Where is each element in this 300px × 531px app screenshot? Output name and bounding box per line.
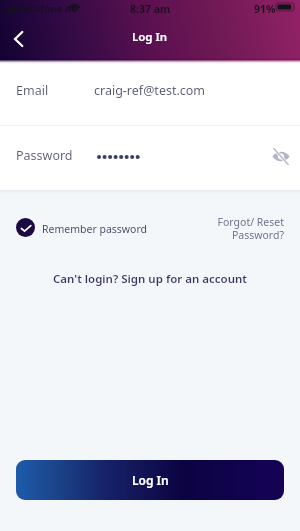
staticText: Remember password [42,222,148,236]
staticText: Forgot/ Reset Password? [217,215,284,242]
button[interactable]: Remember password [16,218,148,237]
staticText: craig-ref@test.com [94,82,206,99]
button[interactable]: Can't login? Sign up for an account [0,271,300,287]
staticText: Log In [132,29,168,45]
staticText: 91% [254,2,276,16]
button[interactable]: Show password [266,141,296,171]
staticText: Log In [132,472,169,488]
button[interactable]: Log In [16,460,284,500]
staticText: Email [16,82,49,99]
staticText: Can't login? Sign up for an account [53,271,247,287]
button[interactable]: Back [0,22,36,58]
button[interactable]: Forgot/ Reset Password? [217,215,284,242]
staticText: 8:37 am [130,2,171,16]
staticText: Vodafone AU [17,2,79,15]
staticText: Password [16,147,73,164]
